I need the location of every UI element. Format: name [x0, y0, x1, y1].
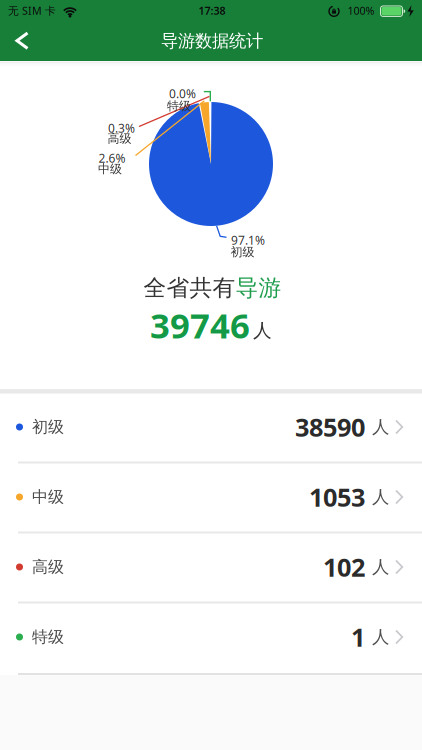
- staticText: 39746: [150, 302, 250, 348]
- button[interactable]: Back: [0, 0, 44, 44]
- button[interactable]: 中级: [0, 462, 422, 532]
- button[interactable]: 特级: [0, 602, 422, 672]
- staticText: 人: [372, 626, 389, 648]
- staticText: 高级: [32, 557, 64, 577]
- staticText: 100%: [347, 3, 374, 18]
- staticText: 102: [323, 550, 365, 584]
- staticText: 1053: [309, 480, 365, 514]
- staticText: 全省共有: [143, 274, 235, 302]
- staticText: 中级: [32, 487, 64, 507]
- button[interactable]: 高级: [0, 532, 422, 602]
- staticText: 无 SIM 卡: [8, 3, 56, 18]
- staticText: 特级: [32, 627, 64, 647]
- staticText: 中级: [98, 162, 122, 176]
- staticText: 人: [372, 416, 389, 438]
- staticText: 0.0%: [169, 85, 196, 101]
- staticText: 初级: [230, 245, 254, 259]
- staticText: 2.6%: [98, 150, 125, 166]
- staticText: 17:38: [198, 3, 225, 18]
- staticText: 高级: [107, 131, 131, 146]
- staticText: 特级: [167, 99, 191, 113]
- staticText: 97.1%: [231, 232, 265, 248]
- staticText: 导游数据统计: [161, 30, 263, 52]
- staticText: 1: [351, 620, 365, 654]
- staticText: 人: [372, 486, 389, 508]
- staticText: 导游: [235, 274, 281, 302]
- staticText: 人: [372, 556, 389, 578]
- button[interactable]: 初级: [0, 392, 422, 462]
- staticText: 人: [253, 319, 272, 342]
- staticText: 0.3%: [108, 120, 135, 136]
- staticText: 初级: [32, 417, 64, 437]
- staticText: 38590: [295, 410, 365, 444]
